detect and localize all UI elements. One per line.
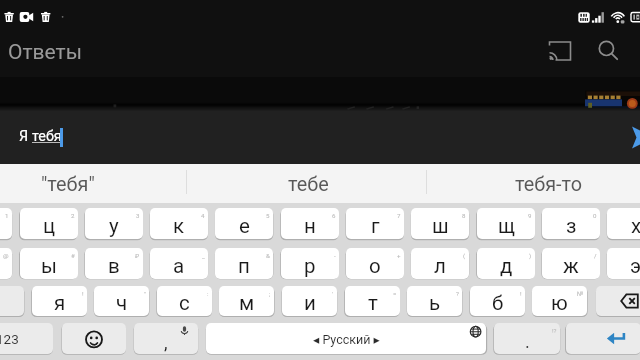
staticText: ;: [269, 290, 271, 297]
button[interactable]: Shift: [0, 286, 24, 316]
staticText: /: [594, 252, 597, 259]
staticText: в: [108, 254, 120, 278]
staticText: л: [434, 254, 446, 278]
staticText: х: [631, 214, 640, 238]
button[interactable]: д: [477, 248, 535, 279]
staticText: б: [492, 291, 504, 315]
staticText: 5: [266, 212, 270, 219]
button[interactable]: р: [281, 248, 339, 279]
button[interactable]: Space: [206, 323, 486, 354]
staticText: .: [525, 331, 530, 352]
staticText: "тебя": [41, 173, 95, 196]
button[interactable]: ы: [20, 248, 78, 279]
button[interactable]: и: [282, 286, 337, 316]
staticText: э: [630, 254, 640, 278]
staticText: о: [369, 254, 381, 278]
button[interactable]: ь: [407, 286, 462, 316]
button[interactable]: ж: [542, 248, 600, 279]
staticText: !?: [552, 327, 557, 334]
staticText: 2: [71, 212, 75, 219]
staticText: ): [529, 252, 532, 259]
button[interactable]: у: [85, 208, 143, 239]
staticText: #: [71, 252, 75, 259]
staticText: Я: [19, 128, 32, 145]
staticText: а: [173, 254, 185, 278]
button[interactable]: х: [607, 208, 640, 239]
button[interactable]: .: [494, 323, 560, 354]
staticText: с: [179, 291, 190, 315]
staticText: ы: [41, 254, 57, 278]
staticText: я: [54, 291, 66, 315]
staticText: тебя: [32, 128, 62, 145]
button[interactable]: Cast screen: [541, 32, 579, 70]
button[interactable]: тебя-то: [428, 164, 640, 204]
staticText: Ответы: [8, 40, 82, 65]
staticText: 8: [462, 212, 466, 219]
staticText: ч: [116, 291, 128, 315]
staticText: 123: [0, 331, 19, 347]
button[interactable]: й: [0, 208, 12, 239]
button[interactable]: т: [345, 286, 400, 316]
staticText: г: [371, 214, 380, 238]
button[interactable]: л: [411, 248, 469, 279]
staticText: 3: [136, 212, 140, 219]
button[interactable]: тебе: [188, 164, 428, 204]
staticText: -: [334, 252, 336, 259]
button[interactable]: 123: [0, 323, 53, 354]
button[interactable]: ,: [134, 323, 198, 354]
staticText: ш: [432, 214, 449, 238]
staticText: п: [238, 254, 250, 278]
staticText: =: [393, 290, 397, 297]
button[interactable]: Enter: [566, 323, 640, 354]
button[interactable]: Emoji: [62, 323, 126, 354]
button[interactable]: н: [281, 208, 339, 239]
button[interactable]: ц: [20, 208, 78, 239]
staticText: (: [463, 252, 466, 259]
button[interactable]: "тебя": [0, 164, 188, 204]
staticText: з: [566, 214, 577, 238]
button[interactable]: Send: [621, 119, 640, 156]
staticText: ': [332, 290, 334, 297]
button[interactable]: п: [215, 248, 273, 279]
button[interactable]: щ: [477, 208, 535, 239]
staticText: 0: [593, 212, 597, 219]
button[interactable]: о: [346, 248, 404, 279]
staticText: 4: [201, 212, 205, 219]
staticText: и: [304, 291, 316, 315]
button[interactable]: Search: [589, 31, 627, 69]
button[interactable]: к: [150, 208, 208, 239]
button[interactable]: э: [607, 248, 640, 279]
button[interactable]: я: [32, 286, 87, 316]
staticText: ,: [164, 332, 168, 353]
staticText: н: [304, 214, 316, 238]
button[interactable]: в: [85, 248, 143, 279]
button[interactable]: Backspace: [596, 286, 640, 316]
staticText: ◂ Русский ▸: [313, 332, 380, 347]
staticText: !: [82, 290, 84, 297]
staticText: :: [207, 290, 209, 297]
button[interactable]: б: [470, 286, 525, 316]
button[interactable]: ю: [532, 286, 587, 316]
button[interactable]: ч: [94, 286, 149, 316]
staticText: _: [202, 252, 205, 259]
button[interactable]: ф: [0, 248, 12, 279]
staticText: +: [397, 252, 401, 259]
button[interactable]: з: [542, 208, 600, 239]
staticText: ₽: [135, 252, 140, 259]
button[interactable]: а: [150, 248, 208, 279]
staticText: м: [239, 291, 255, 315]
staticText: 6: [332, 212, 336, 219]
button[interactable]: е: [215, 208, 273, 239]
staticText: ю: [551, 291, 568, 315]
staticText: &: [266, 252, 270, 259]
staticText: тебя-то: [515, 173, 582, 196]
button[interactable]: с: [157, 286, 212, 316]
staticText: 9: [528, 212, 532, 219]
button[interactable]: г: [346, 208, 404, 239]
staticText: у: [109, 214, 119, 238]
button[interactable]: м: [219, 286, 274, 316]
staticText: ?: [456, 290, 459, 297]
button[interactable]: ш: [411, 208, 469, 239]
staticText: е: [239, 214, 250, 238]
staticText: 1: [5, 212, 9, 219]
